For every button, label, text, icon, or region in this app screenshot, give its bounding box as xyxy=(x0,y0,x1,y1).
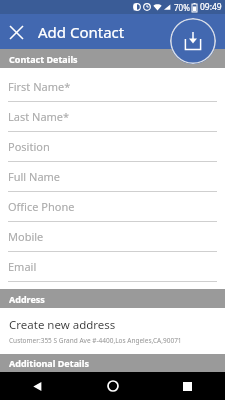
button[interactable]: Office Phone xyxy=(0,192,225,222)
button[interactable]: Save xyxy=(170,18,216,64)
staticText: Contact Details xyxy=(9,53,78,65)
staticText: First Name* xyxy=(8,79,71,94)
staticText: Customer:355 S Grand Ave #-4400,Los Ange… xyxy=(9,336,182,345)
button[interactable]: Last Name* xyxy=(0,102,225,132)
button[interactable]: Full Name xyxy=(0,162,225,192)
button[interactable]: Home xyxy=(75,372,150,400)
staticText: 09:49 xyxy=(200,1,222,13)
staticText: Create new address xyxy=(9,317,116,333)
staticText: 70% xyxy=(174,2,190,13)
button[interactable]: Email xyxy=(0,252,225,282)
staticText: Last Name* xyxy=(8,109,70,124)
button[interactable]: First Name* xyxy=(0,72,225,102)
button[interactable]: Recent apps xyxy=(150,372,225,400)
button[interactable]: Mobile xyxy=(0,222,225,252)
staticText: Address xyxy=(9,293,45,305)
staticText: Office Phone xyxy=(8,199,75,214)
staticText: Position xyxy=(8,139,50,154)
button[interactable]: Create new address xyxy=(0,308,225,354)
button[interactable]: Position xyxy=(0,132,225,162)
staticText: Mobile xyxy=(8,229,44,244)
staticText: Additional Details xyxy=(9,357,89,369)
staticText: Email xyxy=(8,259,37,274)
button[interactable]: Close xyxy=(0,16,32,48)
staticText: Full Name xyxy=(8,169,61,184)
button[interactable]: Back xyxy=(0,372,75,400)
staticText: Add Contact xyxy=(38,22,125,42)
